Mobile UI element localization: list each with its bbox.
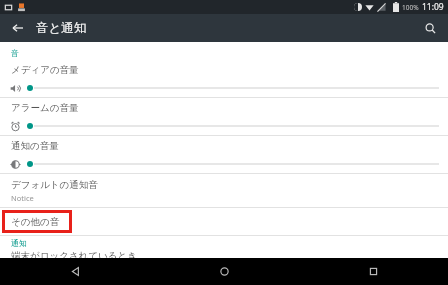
- staticText: メディアの音量: [11, 64, 79, 76]
- staticText: 通知の音量: [11, 140, 59, 152]
- button[interactable]: アラームの音量: [0, 98, 448, 135]
- button[interactable]: 通知の音量: [0, 136, 448, 173]
- button[interactable]: メディアの音量: [0, 60, 448, 97]
- staticText: 端末がロックされているとき: [11, 250, 137, 258]
- staticText: その他の音: [11, 216, 60, 228]
- staticText: 通知: [11, 238, 27, 248]
- staticText: Notice: [11, 193, 34, 203]
- button[interactable]: 端末がロックされているとき: [0, 250, 448, 258]
- staticText: 11:09: [422, 1, 444, 13]
- button[interactable]: Search: [417, 15, 443, 41]
- button[interactable]: Back: [5, 15, 31, 41]
- staticText: 音: [11, 48, 19, 58]
- button[interactable]: デフォルトの通知音: [0, 174, 448, 207]
- button[interactable]: Home: [150, 258, 299, 285]
- staticText: 100%: [402, 3, 419, 12]
- button[interactable]: Back: [0, 258, 150, 285]
- button[interactable]: Recent apps: [299, 258, 448, 285]
- staticText: アラームの音量: [11, 102, 79, 114]
- staticText: デフォルトの通知音: [11, 179, 98, 191]
- button[interactable]: その他の音: [0, 208, 448, 235]
- staticText: 音と通知: [36, 20, 87, 36]
